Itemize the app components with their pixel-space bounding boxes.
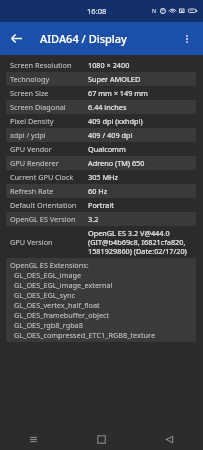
staticText: OpenGL ES 3.2 V@444.0 (GIT@b4b69c8, I682…: [88, 228, 192, 256]
button[interactable]: Screen Size: [6, 86, 196, 100]
button[interactable]: Recents: [0, 428, 67, 450]
staticText: Portrait: [88, 200, 192, 210]
staticText: Adreno (TM) 650: [88, 158, 192, 168]
button[interactable]: Screen Diagonal: [6, 100, 196, 114]
staticText: OpenGL ES Extensions:: [10, 260, 89, 270]
staticText: Default Orientation: [10, 200, 84, 210]
button[interactable]: Home: [67, 428, 135, 450]
staticText: GL_OES_EGL_image: [14, 270, 82, 280]
button[interactable]: Back: [135, 428, 203, 450]
button[interactable]: GPU Vendor: [6, 142, 196, 156]
button[interactable]: Refresh Rate: [6, 184, 196, 198]
staticText: GPU Vendor: [10, 144, 84, 154]
staticText: Super AMOLED: [88, 74, 192, 84]
staticText: OpenGL ES Version: [10, 214, 84, 224]
button[interactable]: Back: [0, 22, 33, 55]
staticText: 60 Hz: [88, 186, 192, 196]
staticText: 1080 × 2400: [88, 60, 192, 70]
button[interactable]: Pixel Density: [6, 114, 196, 128]
staticText: GL_OES_EGL_sync: [14, 290, 76, 300]
staticText: 3.2: [88, 214, 192, 224]
staticText: GL_OES_rgb8_rgba8: [14, 320, 83, 330]
staticText: Refresh Rate: [10, 186, 84, 196]
staticText: Qualcomm: [88, 144, 192, 154]
staticText: 16:08: [87, 6, 107, 16]
staticText: 409 / 409 dpi: [88, 130, 192, 140]
button[interactable]: OpenGL ES Extensions:: [6, 258, 196, 342]
staticText: 409 dpi (xxhdpi): [88, 116, 192, 126]
staticText: GL_OES_EGL_image_external: [14, 280, 113, 290]
staticText: Screen Diagonal: [10, 102, 84, 112]
staticText: GL_OES_vertex_half_float: [14, 300, 100, 310]
staticText: 305 MHz: [88, 172, 192, 182]
staticText: xdpi / ydpi: [10, 130, 84, 140]
staticText: AIDA64 / Display: [40, 31, 170, 46]
staticText: N: [152, 7, 157, 15]
button[interactable]: More options: [170, 22, 203, 55]
button[interactable]: Default Orientation: [6, 198, 196, 212]
button[interactable]: xdpi / ydpi: [6, 128, 196, 142]
staticText: 67 mm × 149 mm: [88, 88, 192, 98]
button[interactable]: Screen Resolution: [6, 58, 196, 72]
button[interactable]: OpenGL ES Version: [6, 212, 196, 226]
button[interactable]: GPU Renderer: [6, 156, 196, 170]
button[interactable]: Technology: [6, 72, 196, 86]
staticText: GPU Version: [10, 237, 84, 247]
staticText: GL_OES_framebuffer_object: [14, 310, 110, 320]
staticText: Pixel Density: [10, 116, 84, 126]
staticText: 6.44 inches: [88, 102, 192, 112]
staticText: Technology: [10, 74, 84, 84]
staticText: Screen Size: [10, 88, 84, 98]
button[interactable]: GPU Version: [6, 226, 196, 258]
staticText: Screen Resolution: [10, 60, 84, 70]
staticText: Current GPU Clock: [10, 172, 84, 182]
button[interactable]: Current GPU Clock: [6, 170, 196, 184]
staticText: GPU Renderer: [10, 158, 84, 168]
staticText: GL_OES_compressed_ETC1_RGB8_texture: [14, 330, 156, 340]
